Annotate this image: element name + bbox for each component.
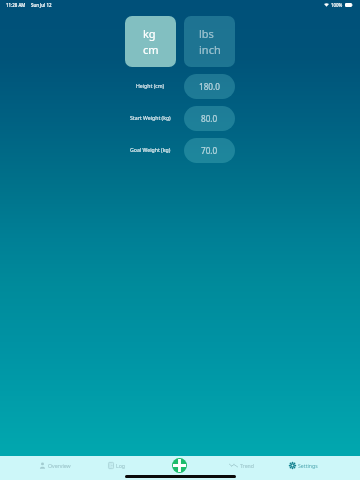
button[interactable]: kg	[125, 16, 176, 67]
button[interactable]: Overview	[24, 456, 86, 474]
staticText: Height (cm)	[136, 82, 165, 89]
staticText: Log	[116, 462, 126, 469]
button[interactable]: Trend	[210, 456, 272, 474]
staticText: Sun Jul 12	[31, 2, 52, 8]
staticText: lbs	[199, 26, 214, 41]
button[interactable]: 80.0	[184, 106, 235, 131]
staticText: 80.0	[201, 113, 218, 124]
staticText: cm	[143, 42, 159, 57]
button[interactable]: Settings	[272, 456, 334, 474]
button[interactable]: Log	[86, 456, 148, 474]
button[interactable]: 180.0	[184, 74, 235, 99]
staticText: Start Weight (kg)	[130, 114, 171, 121]
staticText: 70.0	[201, 145, 218, 156]
staticText: Settings	[298, 462, 318, 469]
button[interactable]: lbs	[184, 16, 235, 67]
staticText: 180.0	[199, 81, 220, 92]
staticText: 11:28 AM	[6, 2, 26, 8]
staticText: 100%	[331, 2, 343, 8]
staticText: Goal Weight (kg)	[130, 146, 171, 153]
staticText: inch	[199, 42, 221, 57]
button[interactable]: Add entry	[172, 458, 187, 473]
button[interactable]: 70.0	[184, 138, 235, 163]
staticText: kg	[143, 26, 156, 41]
staticText: Overview	[48, 462, 71, 469]
staticText: Trend	[240, 462, 254, 469]
